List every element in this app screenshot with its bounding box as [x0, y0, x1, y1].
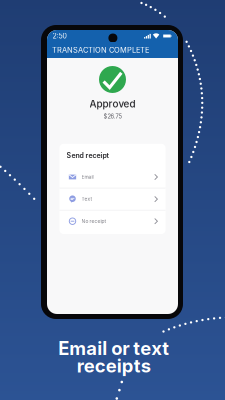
staticText: receipts — [77, 355, 151, 377]
button[interactable]: No receipt — [59, 210, 165, 232]
staticText: Approved — [89, 98, 135, 110]
button[interactable]: Text — [59, 188, 165, 210]
staticText: Email or text — [58, 337, 169, 359]
staticText: 2:50 — [52, 32, 66, 40]
staticText: Text — [81, 196, 92, 202]
staticText: Send receipt — [66, 151, 108, 160]
staticText: TRANSACTION COMPLETE — [52, 45, 149, 54]
button[interactable]: Email — [59, 166, 165, 188]
staticText: No receipt — [81, 218, 106, 224]
staticText: Email — [81, 174, 93, 180]
staticText: $26.75 — [103, 113, 121, 120]
